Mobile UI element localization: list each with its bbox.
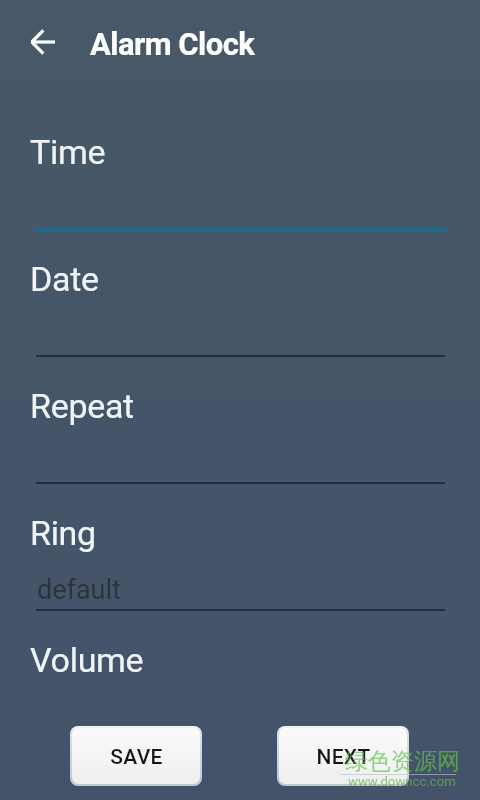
button[interactable]: Back (18, 18, 66, 66)
button[interactable]: Ring (0, 497, 480, 621)
button[interactable]: Volume (0, 624, 480, 696)
staticText: 绿色资源网 (345, 747, 460, 776)
staticText: Ring (30, 513, 96, 553)
staticText: Time (30, 132, 106, 172)
staticText: NEXT (316, 745, 371, 770)
button[interactable]: SAVE (72, 728, 200, 784)
staticText: Alarm Clock (90, 26, 255, 62)
staticText: www.downcc.com (348, 774, 456, 789)
button[interactable]: Date (0, 243, 480, 367)
staticText: default (37, 574, 121, 606)
button[interactable]: Repeat (0, 370, 480, 494)
staticText: Date (30, 259, 99, 299)
staticText: Repeat (30, 386, 134, 426)
button[interactable]: Time (0, 116, 480, 240)
button[interactable]: NEXT (279, 728, 407, 784)
staticText: Volume (30, 640, 144, 680)
staticText: SAVE (110, 745, 163, 770)
